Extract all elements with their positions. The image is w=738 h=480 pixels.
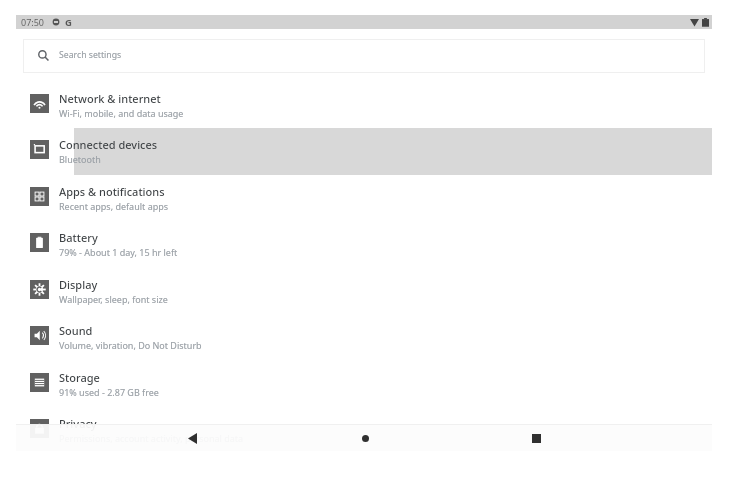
button[interactable]: Battery <box>16 221 712 268</box>
staticText: Storage <box>59 370 100 385</box>
staticText: G <box>65 16 72 29</box>
staticText: 07:50 <box>21 16 45 28</box>
staticText: Wallpaper, sleep, font size <box>59 293 168 305</box>
staticText: Permissions, account activity, personal … <box>59 432 244 444</box>
button[interactable]: Search settings <box>23 39 705 73</box>
button[interactable]: Storage <box>16 361 712 408</box>
staticText: Privacy <box>59 416 97 431</box>
staticText: Wi-Fi, mobile, and data usage <box>59 107 184 119</box>
staticText: Connected devices <box>59 137 158 152</box>
staticText: 91% used - 2.87 GB free <box>59 386 159 398</box>
button[interactable]: Network & internet <box>16 82 712 129</box>
staticText: Search settings <box>59 49 122 61</box>
button[interactable]: Apps & notifications <box>16 175 712 222</box>
staticText: Bluetooth <box>59 153 101 165</box>
button[interactable]: Display <box>16 268 712 315</box>
button[interactable]: Privacy <box>16 407 712 451</box>
button[interactable]: Back <box>180 425 204 451</box>
staticText: Network & internet <box>59 91 161 106</box>
button[interactable]: Recent apps <box>524 425 548 451</box>
staticText: Battery <box>59 230 98 245</box>
staticText: Sound <box>59 323 93 338</box>
button[interactable]: Home <box>353 425 377 451</box>
button[interactable]: Connected devices <box>16 128 712 175</box>
staticText: Volume, vibration, Do Not Disturb <box>59 339 202 351</box>
staticText: Recent apps, default apps <box>59 200 169 212</box>
staticText: Display <box>59 277 98 292</box>
staticText: 79% - About 1 day, 15 hr left <box>59 246 178 258</box>
staticText: Apps & notifications <box>59 184 165 199</box>
button[interactable]: Sound <box>16 314 712 361</box>
